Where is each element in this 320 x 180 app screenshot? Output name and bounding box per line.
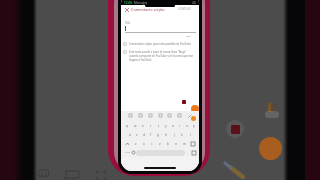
- button[interactable]: Handwriting: [187, 113, 192, 118]
- button[interactable]: i: [176, 122, 183, 130]
- button[interactable]: r: [147, 122, 155, 130]
- staticText: Este texto puede ir para la nueva linea …: [129, 50, 196, 62]
- staticText: v: [159, 142, 161, 146]
- button[interactable]: h: [162, 131, 170, 139]
- button[interactable]: Google: [191, 116, 196, 121]
- staticText: g: [157, 133, 159, 137]
- button[interactable]: n: [172, 140, 180, 148]
- button[interactable]: keyboard tool 0: [128, 113, 133, 118]
- button[interactable]: q: [123, 122, 131, 130]
- button[interactable]: k: [178, 131, 186, 139]
- staticText: a: [129, 133, 131, 137]
- button[interactable]: Cast: [64, 170, 80, 180]
- staticText: z: [135, 142, 137, 146]
- button[interactable]: e: [139, 122, 147, 130]
- button[interactable]: w: [131, 122, 139, 130]
- button[interactable]: Backspace: [188, 140, 197, 148]
- button[interactable]: l: [186, 131, 194, 139]
- button[interactable]: s: [133, 131, 140, 139]
- staticText: p: [193, 124, 195, 128]
- staticText: 12:05: [124, 1, 133, 5]
- button[interactable]: Close: [123, 6, 130, 13]
- staticText: 0/50: [186, 34, 191, 37]
- button[interactable]: GUARDAR: [178, 7, 191, 11]
- button[interactable]: f: [147, 131, 154, 139]
- button[interactable]: d: [140, 131, 147, 139]
- button[interactable]: Subtitles: [38, 168, 49, 179]
- staticText: ?123: [125, 151, 130, 154]
- staticText: Comentario viejito para esta pantalla de…: [129, 42, 191, 46]
- button[interactable]: t: [155, 122, 162, 130]
- button[interactable]: keyboard tool 3: [158, 113, 163, 118]
- button[interactable]: keyboard tool 1: [138, 113, 143, 118]
- button[interactable]: u: [169, 122, 176, 130]
- staticText: n: [175, 142, 177, 146]
- button[interactable]: keyboard tool 5: [177, 113, 182, 118]
- staticText: d: [143, 133, 145, 137]
- button[interactable]: v: [156, 140, 164, 148]
- button[interactable]: m: [180, 140, 188, 148]
- staticText: s: [136, 133, 138, 137]
- staticText: Mensajes: [134, 1, 148, 5]
- button[interactable]: p: [190, 122, 197, 130]
- button[interactable]: keyboard tool 4: [167, 113, 172, 118]
- staticText: Title: [125, 21, 131, 25]
- button[interactable]: a: [126, 131, 133, 139]
- button[interactable]: x: [140, 140, 148, 148]
- button[interactable]: g: [154, 131, 162, 139]
- button[interactable]: Fullscreen: [96, 171, 106, 180]
- staticText: w: [134, 124, 137, 128]
- staticText: 4G: [192, 1, 196, 5]
- button[interactable]: Emoji: [131, 149, 136, 156]
- staticText: k: [181, 133, 183, 137]
- staticText: b: [167, 142, 169, 146]
- staticText: i: [179, 124, 180, 128]
- button[interactable]: j: [170, 131, 178, 139]
- staticText: c: [151, 142, 153, 146]
- button[interactable]: c: [148, 140, 156, 148]
- staticText: o: [186, 124, 188, 128]
- staticText: GUARDAR: [178, 7, 191, 11]
- staticText: h: [165, 133, 167, 137]
- staticText: m: [183, 142, 186, 146]
- button[interactable]: Shift: [123, 140, 132, 148]
- staticText: .: [187, 151, 188, 155]
- button[interactable]: keyboard tool 2: [148, 113, 153, 118]
- button[interactable]: Enter: [190, 149, 197, 156]
- button[interactable]: ?123: [123, 149, 131, 156]
- button[interactable]: Comentario viejito para esta pantalla de…: [123, 42, 195, 46]
- staticText: y: [165, 124, 167, 128]
- staticText: u: [172, 124, 174, 128]
- button[interactable]: y: [162, 122, 169, 130]
- staticText: e: [142, 124, 144, 128]
- staticText: Comentario viejito: [131, 7, 165, 12]
- button[interactable]: o: [183, 122, 190, 130]
- staticText: l: [190, 133, 191, 137]
- button[interactable]: z: [132, 140, 140, 148]
- staticText: r: [150, 124, 152, 128]
- staticText: j: [174, 133, 175, 137]
- staticText: x: [143, 142, 145, 146]
- staticText: f: [150, 133, 152, 137]
- staticText: q: [126, 124, 128, 128]
- staticText: t: [158, 124, 160, 128]
- button[interactable]: b: [164, 140, 172, 148]
